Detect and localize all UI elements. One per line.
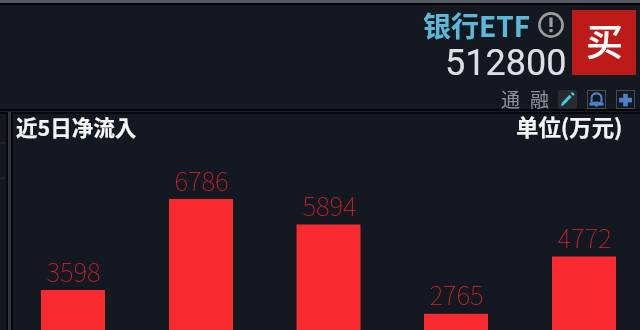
staticText: 512800: [445, 42, 567, 84]
staticText: 4772: [557, 218, 612, 256]
staticText: 通: [501, 85, 521, 113]
staticText: 单位(万元): [516, 110, 623, 142]
staticText: 3598: [46, 252, 101, 290]
staticText: 买: [586, 13, 623, 67]
button[interactable]: 近5日净流入: [16, 111, 137, 142]
staticText: 5894: [302, 186, 357, 224]
staticText: 融: [530, 85, 550, 113]
button[interactable]: Add to watchlist: [616, 90, 635, 109]
button[interactable]: 通: [501, 85, 521, 113]
staticText: 2765: [429, 275, 484, 313]
button[interactable]: 融: [530, 85, 550, 113]
button[interactable]: 银行ETF: [423, 5, 531, 46]
staticText: 近5日净流入: [16, 111, 137, 142]
staticText: 6786: [174, 161, 229, 199]
button[interactable]: Edit note: [558, 90, 577, 109]
button[interactable]: Price alert: [587, 90, 606, 109]
button[interactable]: 买: [572, 10, 636, 75]
button[interactable]: Info: [538, 12, 564, 38]
staticText: 银行ETF: [423, 5, 531, 46]
